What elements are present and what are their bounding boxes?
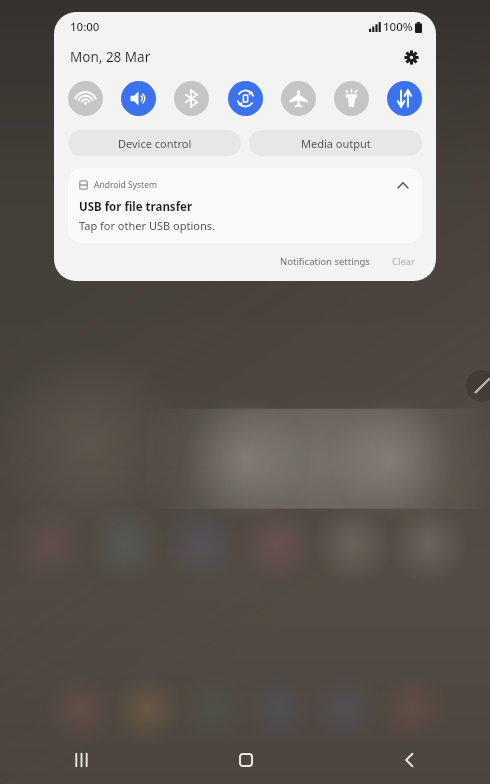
button[interactable]: Sound	[121, 81, 156, 116]
button[interactable]: Bluetooth	[174, 81, 209, 116]
button[interactable]: Clear	[388, 253, 420, 270]
staticText: Tap for other USB options.	[79, 218, 215, 233]
staticText: USB for file transfer	[79, 199, 193, 215]
staticText: Notification settings	[280, 255, 370, 268]
button[interactable]: Collapse	[394, 176, 412, 194]
button[interactable]: Android System	[68, 168, 422, 243]
staticText: Android System	[94, 179, 157, 191]
button[interactable]: Back	[327, 736, 490, 784]
button[interactable]: Mobile data	[387, 81, 422, 116]
button[interactable]: Recent apps	[0, 736, 164, 784]
staticText: Clear	[392, 255, 416, 268]
button[interactable]: Flight mode	[281, 81, 316, 116]
staticText: Mon, 28 Mar	[70, 48, 151, 66]
button[interactable]: Flashlight	[334, 81, 369, 116]
button[interactable]: Media output	[249, 130, 422, 156]
staticText: 100%	[383, 19, 413, 35]
staticText: Device control	[118, 136, 192, 151]
button[interactable]: Device control	[68, 130, 241, 156]
staticText: Media output	[301, 136, 371, 151]
button[interactable]: Edge panel handle	[466, 370, 490, 402]
button[interactable]: Notification settings	[276, 253, 374, 270]
button[interactable]: Wi-Fi	[68, 81, 103, 116]
button[interactable]: Settings	[398, 44, 424, 70]
button[interactable]: Home	[164, 736, 327, 784]
staticText: 10:00	[70, 19, 100, 35]
button[interactable]: Auto rotate	[228, 81, 263, 116]
